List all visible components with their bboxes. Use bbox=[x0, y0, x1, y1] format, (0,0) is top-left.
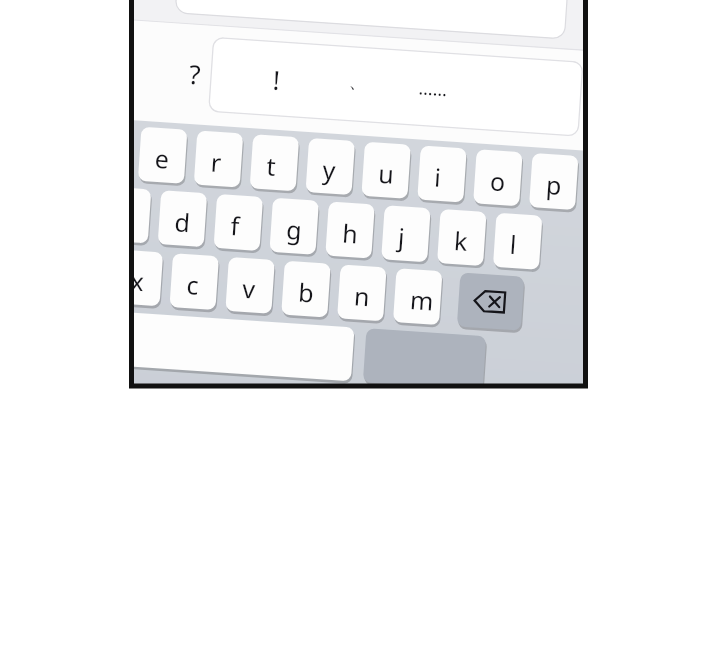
button[interactable]: Keyboard screenshot bbox=[0, 0, 720, 662]
